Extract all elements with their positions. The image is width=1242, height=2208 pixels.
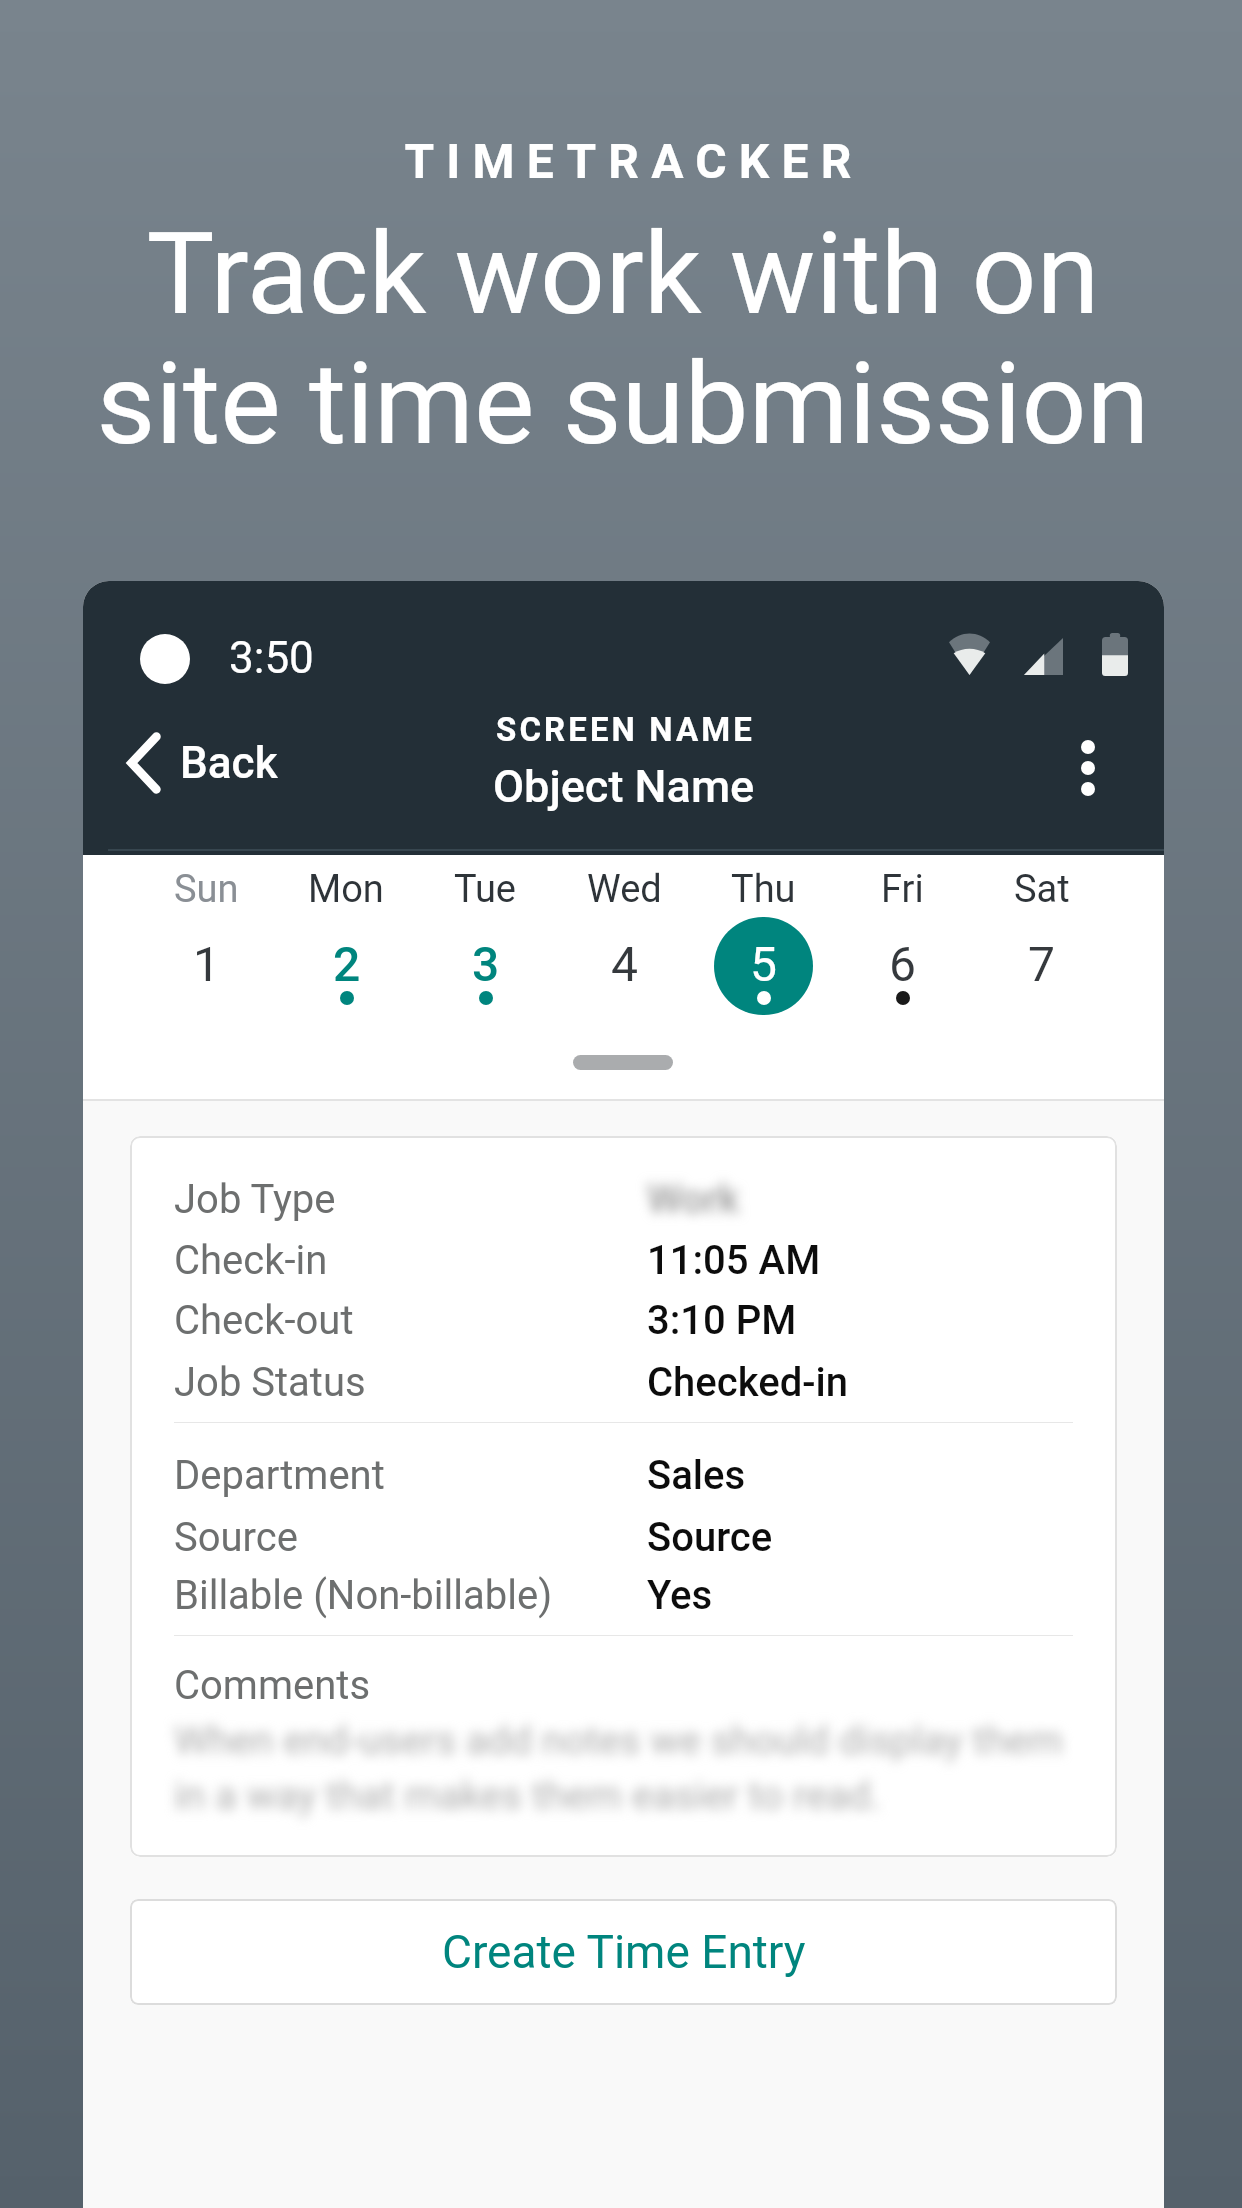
- staticText: Sales: [647, 1452, 746, 1499]
- staticText: 5: [750, 936, 777, 992]
- staticText: Check-out: [174, 1297, 647, 1344]
- button[interactable]: More options: [1040, 718, 1136, 818]
- staticText: Sun: [174, 867, 239, 912]
- staticText: Track work with on site time submission: [96, 207, 1150, 471]
- staticText: Job Type: [174, 1176, 647, 1223]
- staticText: Object Name: [493, 760, 755, 813]
- staticText: Create Time Entry: [442, 1925, 806, 1979]
- staticText: 4: [611, 936, 638, 992]
- staticText: Source: [174, 1514, 647, 1561]
- staticText: Sat: [1014, 867, 1070, 912]
- staticText: Tue: [454, 867, 517, 912]
- staticText: 3: [472, 936, 500, 992]
- staticText: Billable (Non-billable): [174, 1572, 647, 1619]
- staticText: 3:50: [229, 632, 314, 684]
- staticText: Check-in: [174, 1237, 647, 1284]
- button[interactable]: Tue: [416, 855, 555, 1015]
- staticText: Source: [647, 1514, 773, 1561]
- button[interactable]: Back: [111, 716, 302, 810]
- button[interactable]: Mon: [276, 855, 416, 1015]
- staticText: Back: [180, 737, 278, 789]
- staticText: When end-users add notes we should displ…: [174, 1717, 1063, 1819]
- button[interactable]: Sun: [136, 855, 276, 1015]
- staticText: Thu: [731, 867, 796, 912]
- staticText: TIMETRACKER: [404, 133, 864, 189]
- staticText: Mon: [308, 867, 384, 912]
- staticText: 3:10 PM: [647, 1297, 797, 1344]
- staticText: 11:05 AM: [647, 1237, 821, 1284]
- staticText: Checked-in: [647, 1359, 848, 1406]
- button[interactable]: Fri: [833, 855, 972, 1015]
- button[interactable]: Create Time Entry: [130, 1899, 1117, 2005]
- button[interactable]: Wed: [555, 855, 694, 1015]
- button[interactable]: Sat: [972, 855, 1111, 1015]
- staticText: Comments: [174, 1662, 371, 1709]
- staticText: Fri: [881, 867, 924, 912]
- staticText: 6: [889, 936, 916, 992]
- staticText: 1: [193, 936, 220, 992]
- staticText: Work: [647, 1176, 740, 1223]
- staticText: Job Status: [174, 1359, 647, 1406]
- staticText: Yes: [647, 1572, 713, 1619]
- staticText: 7: [1028, 936, 1055, 992]
- staticText: Wed: [587, 867, 662, 912]
- staticText: 2: [333, 936, 361, 992]
- staticText: SCREEN NAME: [496, 710, 756, 749]
- button[interactable]: Thu: [694, 855, 833, 1015]
- staticText: Department: [174, 1452, 647, 1499]
